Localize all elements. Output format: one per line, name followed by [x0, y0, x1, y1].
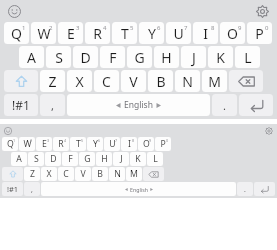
button[interactable]: Y	[139, 22, 164, 44]
button[interactable]: J	[113, 152, 129, 166]
button[interactable]: Q	[2, 137, 18, 151]
button[interactable]: Backspace	[229, 70, 263, 92]
button[interactable]: O	[220, 22, 245, 44]
button[interactable]: ,	[40, 94, 65, 116]
staticText: 0	[166, 138, 169, 143]
staticText: 1	[13, 138, 16, 143]
staticText: 5	[81, 138, 84, 143]
staticText: ,	[31, 185, 33, 194]
staticText: P	[255, 24, 264, 43]
button[interactable]: Z	[40, 70, 65, 92]
button[interactable]: .	[237, 182, 253, 196]
button[interactable]: X	[41, 167, 57, 181]
staticText: S	[55, 48, 63, 67]
button[interactable]: L	[147, 152, 163, 166]
button[interactable]: P	[247, 22, 272, 44]
staticText: 4	[103, 24, 107, 32]
button[interactable]: N	[109, 167, 125, 181]
button[interactable]: !#1	[4, 94, 38, 116]
button[interactable]: !#1	[2, 182, 23, 196]
staticText: 3	[47, 138, 50, 143]
button[interactable]: English	[67, 94, 210, 116]
button[interactable]: E	[58, 22, 83, 44]
button[interactable]: S	[46, 46, 71, 68]
staticText: R	[93, 24, 102, 43]
staticText: Z	[48, 72, 57, 91]
button[interactable]: G	[127, 46, 152, 68]
staticText: H	[101, 153, 108, 165]
button[interactable]: I	[193, 22, 218, 44]
button[interactable]: L	[235, 46, 260, 68]
staticText: L	[153, 153, 158, 165]
button[interactable]: D	[73, 46, 98, 68]
button[interactable]: O	[138, 137, 154, 151]
staticText: 1	[22, 24, 26, 32]
button[interactable]: U	[166, 22, 191, 44]
staticText: Z	[30, 168, 35, 180]
staticText: 0	[265, 24, 269, 32]
button[interactable]: ,	[24, 182, 40, 196]
staticText: K	[216, 48, 225, 67]
staticText: I	[203, 24, 208, 43]
button[interactable]: F	[62, 152, 78, 166]
button[interactable]: A	[11, 152, 27, 166]
button[interactable]: M	[202, 70, 227, 92]
button[interactable]: Q	[4, 22, 29, 44]
button[interactable]: T	[112, 22, 137, 44]
staticText: W	[23, 138, 32, 150]
staticText: 9	[238, 24, 242, 32]
button[interactable]: Settings	[265, 127, 273, 135]
button[interactable]: Backspace	[143, 167, 164, 181]
button[interactable]: A	[19, 46, 44, 68]
staticText: K	[135, 153, 141, 165]
staticText: 6	[157, 24, 161, 32]
button[interactable]: V	[121, 70, 146, 92]
staticText: N	[114, 168, 121, 180]
button[interactable]: K	[208, 46, 233, 68]
button[interactable]: C	[94, 70, 119, 92]
button[interactable]: U	[104, 137, 120, 151]
button[interactable]: T	[70, 137, 86, 151]
button[interactable]: G	[79, 152, 95, 166]
staticText: C	[63, 168, 69, 180]
button[interactable]: V	[75, 167, 91, 181]
button[interactable]: R	[85, 22, 110, 44]
button[interactable]: Shift	[4, 70, 38, 92]
button[interactable]: C	[58, 167, 74, 181]
button[interactable]: J	[181, 46, 206, 68]
staticText: 3	[76, 24, 80, 32]
button[interactable]: H	[96, 152, 112, 166]
button[interactable]: Shift	[2, 167, 23, 181]
button[interactable]: Z	[24, 167, 40, 181]
button[interactable]: K	[130, 152, 146, 166]
staticText: O	[227, 24, 238, 43]
staticText: M	[130, 168, 138, 180]
button[interactable]: W	[31, 22, 56, 44]
button[interactable]: Enter	[254, 182, 275, 196]
button[interactable]: S	[28, 152, 44, 166]
button[interactable]: Emoji	[4, 127, 12, 135]
button[interactable]: I	[121, 137, 137, 151]
staticText: H	[161, 48, 172, 67]
button[interactable]: M	[126, 167, 142, 181]
button[interactable]: F	[100, 46, 125, 68]
button[interactable]: X	[67, 70, 92, 92]
staticText: T	[121, 24, 129, 43]
button[interactable]: R	[53, 137, 69, 151]
button[interactable]: W	[19, 137, 35, 151]
button[interactable]: B	[92, 167, 108, 181]
button[interactable]: B	[148, 70, 173, 92]
button[interactable]: D	[45, 152, 61, 166]
button[interactable]: H	[154, 46, 179, 68]
button[interactable]: .	[212, 94, 237, 116]
button[interactable]: P	[155, 137, 171, 151]
button[interactable]: E	[36, 137, 52, 151]
button[interactable]: English	[41, 182, 236, 196]
staticText: I	[128, 138, 131, 150]
button[interactable]: Y	[87, 137, 103, 151]
button[interactable]: N	[175, 70, 200, 92]
button[interactable]: Emoji	[8, 5, 21, 18]
staticText: Y	[93, 138, 98, 150]
button[interactable]: Settings	[256, 5, 269, 18]
button[interactable]: Enter	[239, 94, 273, 116]
